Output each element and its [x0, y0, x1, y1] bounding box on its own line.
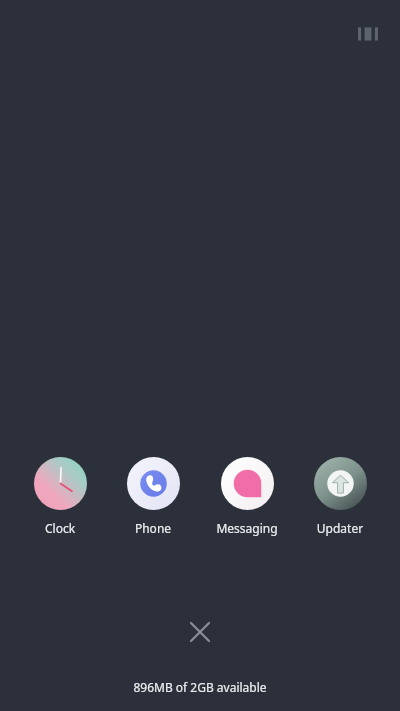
staticText: Clock — [18, 520, 102, 536]
button[interactable]: Recent apps — [352, 18, 384, 50]
staticText: Updater — [298, 520, 382, 536]
button[interactable]: Phone — [111, 455, 195, 538]
staticText: Phone — [111, 520, 195, 536]
staticText: Messaging — [205, 520, 289, 536]
staticText: 896MB of 2GB available — [0, 679, 400, 695]
button[interactable]: Updater — [298, 455, 382, 538]
button[interactable]: Close all — [176, 608, 224, 656]
button[interactable]: Clock — [18, 455, 102, 538]
button[interactable]: Messaging — [205, 455, 289, 538]
